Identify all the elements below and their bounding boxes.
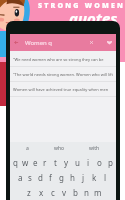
staticText: who bbox=[54, 145, 65, 152]
button[interactable]: k bbox=[89, 170, 100, 185]
button[interactable]: “The world needs strong women. Women who… bbox=[10, 67, 116, 82]
staticText: r bbox=[43, 157, 47, 168]
button[interactable]: “We need women who are so strong they ca… bbox=[10, 52, 116, 67]
staticText: q bbox=[13, 157, 18, 168]
button[interactable]: t bbox=[50, 155, 61, 170]
staticText: i bbox=[87, 157, 90, 168]
staticText: STRONG WOMEN bbox=[38, 1, 125, 11]
staticText: “The world needs strong women. Women who… bbox=[13, 72, 114, 77]
staticText: y bbox=[64, 157, 69, 168]
button[interactable]: y bbox=[61, 155, 72, 170]
staticText: t bbox=[54, 157, 57, 168]
button[interactable]: who bbox=[46, 145, 73, 152]
button[interactable]: Women will have achieved true equality w… bbox=[10, 82, 116, 97]
staticText: p bbox=[108, 157, 113, 168]
button[interactable]: w bbox=[20, 155, 30, 170]
staticText: z bbox=[27, 187, 31, 198]
button[interactable]: f bbox=[45, 170, 56, 185]
button[interactable]: b bbox=[70, 185, 81, 200]
button[interactable]: z bbox=[23, 185, 35, 200]
button[interactable]: d bbox=[35, 170, 45, 185]
staticText: Women q bbox=[25, 39, 53, 47]
staticText: a bbox=[26, 145, 29, 152]
button[interactable]: x bbox=[35, 185, 47, 200]
button[interactable]: n bbox=[81, 185, 92, 200]
button[interactable]: q bbox=[10, 155, 20, 170]
staticText: c bbox=[51, 187, 55, 198]
staticText: b bbox=[73, 187, 78, 198]
button[interactable]: j bbox=[78, 170, 89, 185]
staticText: k bbox=[92, 172, 97, 183]
button[interactable]: g bbox=[56, 170, 67, 185]
staticText: with bbox=[89, 145, 100, 152]
button[interactable]: u bbox=[72, 155, 83, 170]
staticText: l bbox=[104, 172, 107, 183]
button[interactable]: Back bbox=[12, 38, 21, 47]
staticText: a bbox=[18, 172, 23, 183]
button[interactable]: r bbox=[40, 155, 50, 170]
button[interactable]: m bbox=[92, 185, 103, 200]
button[interactable]: v bbox=[59, 185, 70, 200]
staticText: g bbox=[59, 172, 64, 183]
staticText: d bbox=[38, 172, 43, 183]
button[interactable]: Favorites bbox=[105, 38, 114, 47]
staticText: “We need women who are so strong they ca… bbox=[13, 57, 114, 62]
staticText: m bbox=[94, 187, 102, 198]
staticText: quotes bbox=[69, 8, 118, 28]
staticText: x bbox=[39, 187, 44, 198]
button[interactable]: a bbox=[18, 145, 37, 152]
staticText: j bbox=[82, 172, 85, 183]
button[interactable]: e bbox=[30, 155, 40, 170]
button[interactable]: i bbox=[83, 155, 94, 170]
button[interactable]: p bbox=[105, 155, 116, 170]
button[interactable]: with bbox=[81, 145, 108, 152]
staticText: w bbox=[22, 157, 29, 168]
button[interactable]: a bbox=[15, 170, 25, 185]
button[interactable]: s bbox=[25, 170, 35, 185]
staticText: v bbox=[62, 187, 67, 198]
button[interactable]: Clear search bbox=[87, 38, 96, 47]
button[interactable]: o bbox=[94, 155, 105, 170]
staticText: u bbox=[75, 157, 80, 168]
button[interactable]: l bbox=[100, 170, 111, 185]
staticText: Women will have achieved true equality w… bbox=[13, 87, 114, 92]
staticText: h bbox=[70, 172, 75, 183]
staticText: n bbox=[84, 187, 89, 198]
staticText: e bbox=[33, 157, 38, 168]
staticText: s bbox=[28, 172, 32, 183]
staticText: f bbox=[49, 172, 52, 183]
button[interactable]: c bbox=[47, 185, 59, 200]
button[interactable]: h bbox=[67, 170, 78, 185]
staticText: o bbox=[97, 157, 102, 168]
